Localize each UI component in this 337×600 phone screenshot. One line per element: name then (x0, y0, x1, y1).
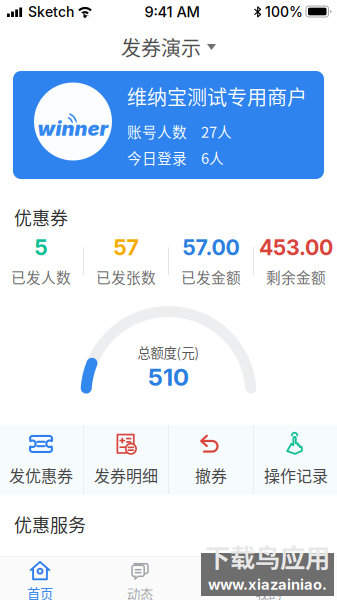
staticText: 总额度(元) (137, 343, 199, 362)
button[interactable]: 操作记录 (254, 425, 337, 494)
staticText: 6人 (201, 147, 224, 168)
staticText: 动态 (127, 584, 153, 600)
button[interactable]: 发优惠券 (0, 425, 83, 494)
button[interactable]: 我的 (200, 556, 337, 600)
staticText: 优惠券 (14, 204, 68, 230)
staticText: 维纳宝测试专用商户 (127, 82, 307, 111)
staticText: 账号人数 (127, 121, 187, 142)
staticText: 今日登录 (127, 147, 187, 168)
staticText: 9:41 AM (144, 3, 199, 21)
button[interactable]: 动态 (80, 556, 200, 600)
staticText: 510 (148, 362, 189, 391)
staticText: 首页 (27, 584, 53, 600)
staticText: 我的 (255, 584, 281, 600)
button[interactable] (84, 559, 167, 583)
staticText: 发券明细 (94, 463, 158, 487)
button[interactable]: 撤券 (169, 425, 253, 494)
staticText: 57.00 (182, 234, 239, 260)
staticText: 操作记录 (264, 463, 328, 487)
staticText: 撤券 (195, 463, 227, 487)
button[interactable] (0, 559, 83, 583)
button[interactable]: 发券明细 (84, 425, 168, 494)
staticText: 优惠服务 (14, 511, 86, 537)
staticText: 发券演示 (121, 32, 201, 61)
staticText: 下载鸟应用 (205, 538, 330, 575)
staticText: www.xiazainiao.com (208, 576, 327, 600)
staticText: 剩余金额 (266, 266, 326, 288)
staticText: 453.00 (259, 234, 333, 260)
staticText: 已发张数 (96, 266, 156, 288)
staticText: Sketch (28, 3, 74, 20)
staticText: 57 (113, 234, 138, 260)
button[interactable]: 发券演示 (121, 32, 216, 62)
button[interactable] (168, 559, 251, 583)
staticText: 已发人数 (11, 266, 71, 288)
staticText: winner (37, 116, 108, 141)
staticText: 27人 (201, 121, 232, 142)
staticText: 5 (34, 234, 47, 260)
staticText: 已发金额 (181, 266, 241, 288)
staticText: 100% (265, 3, 303, 20)
button[interactable]: 首页 (0, 556, 80, 600)
staticText: 发优惠券 (9, 463, 73, 487)
button[interactable] (252, 559, 337, 583)
